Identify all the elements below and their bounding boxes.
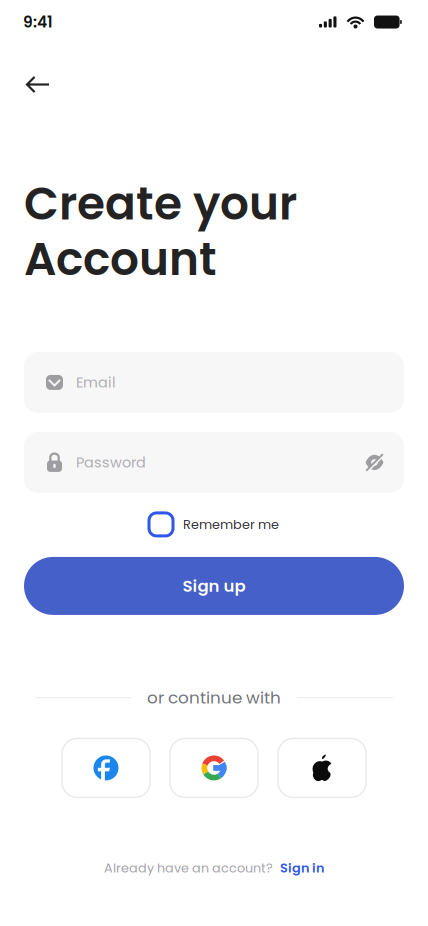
staticText: Sign in — [280, 859, 324, 877]
button[interactable]: Already have an account? — [104, 859, 324, 877]
button[interactable]: Continue with Facebook — [62, 738, 150, 797]
button[interactable]: Continue with Google — [170, 738, 258, 797]
staticText: Password — [76, 452, 146, 473]
staticText: Account — [24, 227, 217, 291]
staticText: Email — [76, 372, 116, 393]
staticText: Remember me — [183, 515, 279, 533]
button[interactable]: Back — [14, 63, 62, 106]
staticText: 9:41 — [23, 11, 53, 33]
staticText: Create your — [24, 172, 297, 235]
button[interactable]: Sign up — [24, 557, 404, 615]
button[interactable]: Continue with Apple — [278, 738, 366, 797]
button[interactable]: Remember me — [149, 513, 279, 536]
staticText: Sign up — [182, 574, 245, 597]
staticText: or continue with — [147, 686, 281, 709]
staticText: Already have an account? — [104, 859, 273, 877]
